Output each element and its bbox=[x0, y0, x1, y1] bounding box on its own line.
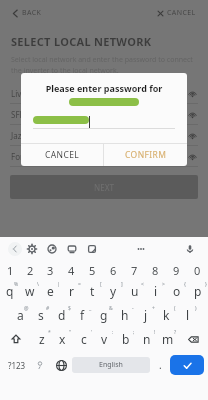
button[interactable]: e bbox=[40, 279, 61, 303]
staticText: \ bbox=[37, 281, 39, 288]
staticText: ?123 bbox=[8, 360, 26, 371]
staticText: * bbox=[48, 329, 51, 336]
staticText: ] bbox=[121, 281, 123, 288]
button[interactable]: CONFIRM bbox=[104, 144, 187, 166]
button[interactable]: v bbox=[94, 327, 115, 351]
staticText: _ bbox=[89, 305, 92, 312]
button[interactable]: 5 bbox=[82, 261, 103, 279]
button[interactable]: SFR_WiFi_Guest bbox=[0, 104, 208, 124]
button[interactable]: 2 bbox=[20, 261, 40, 279]
staticText: } bbox=[205, 281, 207, 288]
button[interactable]: 6 bbox=[103, 261, 124, 279]
button[interactable]: ?123 bbox=[4, 351, 30, 379]
button[interactable]: Enter bbox=[170, 355, 204, 375]
button[interactable]: 9 bbox=[166, 261, 187, 279]
button[interactable]: c bbox=[73, 327, 94, 351]
button[interactable]: d bbox=[51, 303, 72, 327]
staticText: h bbox=[121, 307, 129, 323]
staticText: l bbox=[186, 307, 190, 323]
staticText: b bbox=[122, 331, 130, 347]
staticText: Please enter password for bbox=[21, 82, 187, 94]
staticText: CANCEL bbox=[45, 149, 80, 161]
button[interactable]: Change language bbox=[50, 351, 72, 379]
staticText: u bbox=[131, 283, 139, 299]
staticText: : bbox=[112, 329, 114, 336]
button[interactable]: 8 bbox=[145, 261, 166, 279]
button[interactable]: m bbox=[157, 327, 178, 351]
button[interactable]: h bbox=[114, 303, 135, 327]
button[interactable]: Emoji bbox=[30, 351, 50, 379]
button[interactable]: English bbox=[72, 357, 150, 373]
staticText: w bbox=[25, 283, 35, 299]
button[interactable]: u bbox=[124, 279, 145, 303]
staticText: d bbox=[58, 307, 66, 323]
button[interactable]: Clipboard bbox=[82, 239, 102, 259]
staticText: 3 bbox=[47, 263, 54, 278]
button[interactable]: Voice input bbox=[180, 239, 200, 259]
button[interactable]: j bbox=[135, 303, 156, 327]
button[interactable]: l bbox=[177, 303, 198, 327]
button[interactable]: 3 bbox=[40, 261, 61, 279]
button[interactable]: x bbox=[52, 327, 73, 351]
button[interactable] bbox=[33, 116, 175, 129]
staticText: e bbox=[47, 283, 54, 299]
staticText: y bbox=[110, 283, 117, 299]
staticText: - bbox=[132, 305, 134, 312]
button[interactable]: Themes bbox=[42, 239, 62, 259]
staticText: 8 bbox=[152, 263, 159, 278]
button[interactable]: More options bbox=[131, 239, 151, 259]
button[interactable]: k bbox=[156, 303, 177, 327]
button[interactable]: Jazztel_2G4 bbox=[0, 125, 208, 145]
staticText: o bbox=[173, 283, 181, 299]
button[interactable]: Backspace bbox=[178, 327, 208, 351]
button[interactable]: p bbox=[187, 279, 208, 303]
button[interactable]: w bbox=[20, 279, 40, 303]
staticText: & bbox=[109, 305, 113, 312]
button[interactable]: q bbox=[0, 279, 20, 303]
staticText: 0 bbox=[194, 263, 201, 278]
button[interactable]: 4 bbox=[61, 261, 82, 279]
staticText: a bbox=[17, 307, 24, 323]
button[interactable]: CANCEL bbox=[21, 144, 103, 166]
staticText: ? bbox=[174, 329, 177, 336]
button[interactable]: o bbox=[166, 279, 187, 303]
button[interactable]: r bbox=[61, 279, 82, 303]
button[interactable]: CANCEL bbox=[155, 4, 198, 22]
button[interactable]: n bbox=[136, 327, 157, 351]
button[interactable]: BACK bbox=[10, 4, 44, 22]
button[interactable]: Settings bbox=[22, 239, 42, 259]
staticText: BACK bbox=[22, 8, 42, 18]
staticText: $ bbox=[68, 305, 71, 312]
button[interactable]: 0 bbox=[187, 261, 208, 279]
staticText: . bbox=[159, 358, 162, 372]
staticText: + bbox=[152, 305, 155, 312]
button[interactable]: s bbox=[30, 303, 51, 327]
button[interactable]: Shift bbox=[0, 327, 31, 351]
button[interactable]: b bbox=[115, 327, 136, 351]
button[interactable]: Fon WiFi bbox=[0, 146, 208, 166]
staticText: x bbox=[59, 331, 66, 347]
button[interactable]: g bbox=[93, 303, 114, 327]
button[interactable]: Back bbox=[8, 242, 22, 256]
button[interactable]: . bbox=[150, 351, 170, 379]
button[interactable]: Stickers bbox=[62, 239, 82, 259]
staticText: v bbox=[101, 331, 108, 347]
staticText: # bbox=[46, 305, 50, 312]
staticText: c bbox=[81, 331, 87, 347]
button[interactable]: f bbox=[72, 303, 93, 327]
button[interactable]: Livebox-3A21 bbox=[0, 83, 208, 103]
button[interactable]: i bbox=[145, 279, 166, 303]
staticText: g bbox=[100, 307, 108, 323]
button[interactable]: a bbox=[10, 303, 30, 327]
staticText: n bbox=[143, 331, 151, 347]
staticText: ) bbox=[195, 305, 197, 312]
staticText: ' bbox=[91, 329, 93, 336]
button[interactable]: y bbox=[103, 279, 124, 303]
button[interactable]: z bbox=[31, 327, 52, 351]
button[interactable]: 7 bbox=[124, 261, 145, 279]
button[interactable]: t bbox=[82, 279, 103, 303]
staticText: 4 bbox=[68, 263, 75, 278]
staticText: Select local network and enter the passw… bbox=[11, 55, 197, 75]
button[interactable]: 1 bbox=[0, 261, 20, 279]
